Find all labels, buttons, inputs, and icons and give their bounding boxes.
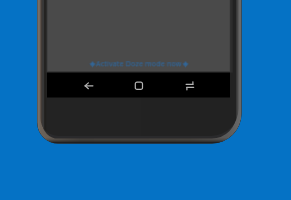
button[interactable]: Back [73,72,103,97]
staticText: Activate Doze mode now [97,59,183,69]
button[interactable]: Activate Doze mode now [47,56,230,72]
button[interactable]: Activate Doze mode now [48,56,231,72]
button[interactable]: Activate Doze mode now [46,56,229,72]
button[interactable]: Home [123,72,153,97]
staticText: Activate Doze mode now [96,60,182,70]
button[interactable]: Recent apps [174,72,204,97]
button[interactable]: Activate Doze mode now [47,57,230,73]
staticText: Activate Doze mode now [96,59,182,69]
staticText: Activate Doze mode now [95,59,181,69]
